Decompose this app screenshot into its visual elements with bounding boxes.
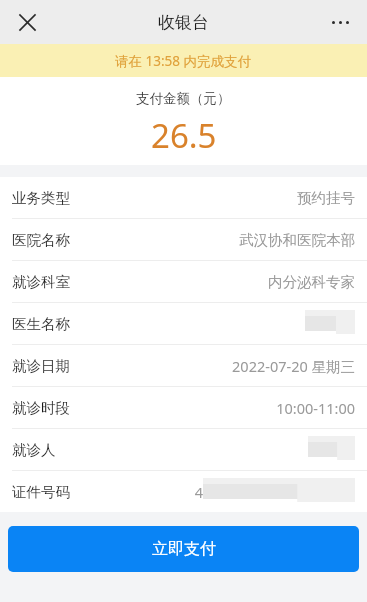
button[interactable]: 立即支付 [8,526,359,572]
staticText: 就诊日期 [12,357,70,375]
staticText: 26.5 [151,113,217,158]
button[interactable]: 就诊科室 [0,261,367,302]
staticText: 立即支付 [152,539,216,559]
staticText: 就诊时段 [12,399,70,417]
staticText: 医生名称 [12,315,70,333]
button[interactable]: 业务类型 [0,177,367,218]
staticText: 4 [194,482,203,502]
staticText: 证件号码 [12,483,70,501]
staticText: 就诊科室 [12,273,70,291]
button[interactable]: 就诊时段 [0,387,367,428]
button[interactable]: 证件号码 [0,471,367,512]
staticText: 10:00-11:00 [276,398,355,418]
staticText: 业务类型 [12,189,70,207]
button[interactable]: 医生名称 [0,303,367,344]
staticText: 支付金额（元） [136,90,231,107]
staticText: 预约挂号 [297,189,355,207]
staticText: 武汉协和医院本部 [239,231,355,249]
button[interactable]: 就诊日期 [0,345,367,386]
button[interactable]: 就诊人 [0,429,367,470]
button[interactable]: Close [10,5,44,39]
staticText: 内分泌科专家 [268,273,355,291]
button[interactable]: More options [323,5,357,39]
staticText: 医院名称 [12,231,70,249]
staticText: 就诊人 [12,441,56,459]
staticText: 收银台 [158,12,209,33]
button[interactable]: 医院名称 [0,219,367,260]
staticText: 2022-07-20 星期三 [232,356,355,376]
staticText: 请在 13:58 内完成支付 [115,52,252,70]
